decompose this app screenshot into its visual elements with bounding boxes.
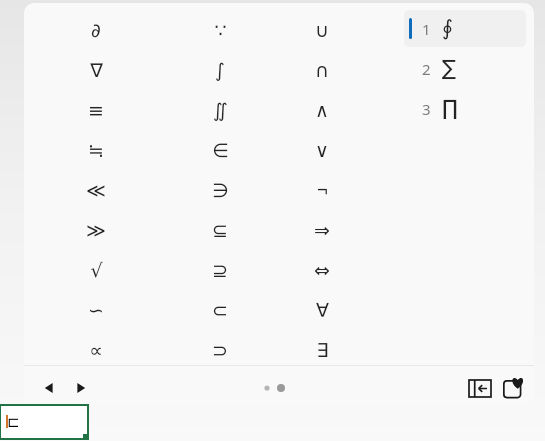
staticText: 3 bbox=[422, 99, 431, 119]
button[interactable]: ∧ bbox=[296, 90, 348, 130]
button[interactable]: ∀ bbox=[296, 290, 348, 330]
staticText: 1 bbox=[422, 19, 431, 39]
button[interactable]: ∃ bbox=[296, 330, 348, 370]
staticText: ∃ bbox=[316, 339, 329, 361]
button[interactable]: Dock panel bbox=[465, 373, 495, 403]
staticText: ∪ bbox=[315, 19, 329, 41]
button[interactable]: ≪ bbox=[70, 170, 122, 210]
staticText: ⇔ bbox=[314, 259, 330, 281]
staticText: ∮ bbox=[442, 16, 453, 40]
staticText: ≪ bbox=[86, 179, 106, 201]
button[interactable]: ∩ bbox=[296, 50, 348, 90]
staticText: ⊂ bbox=[212, 299, 228, 321]
staticText: ∈ bbox=[212, 139, 229, 161]
staticText: ≡ bbox=[88, 99, 104, 121]
staticText: ∽ bbox=[88, 299, 104, 321]
staticText: ⊃ bbox=[212, 339, 228, 361]
button[interactable]: ∫ bbox=[194, 50, 246, 90]
button[interactable]: Previous page bbox=[34, 373, 64, 403]
staticText: ¬ bbox=[317, 177, 328, 203]
button[interactable]: ∈ bbox=[194, 130, 246, 170]
staticText: √ bbox=[90, 259, 103, 281]
button[interactable]: ⊇ bbox=[194, 250, 246, 290]
button[interactable]: ≡ bbox=[70, 90, 122, 130]
staticText: 2 bbox=[422, 59, 431, 79]
button[interactable]: ⊆ bbox=[194, 210, 246, 250]
button[interactable]: Next page bbox=[66, 373, 96, 403]
staticText: ⇒ bbox=[314, 219, 330, 241]
button[interactable]: Favorites bbox=[498, 371, 530, 403]
staticText: ∩ bbox=[315, 59, 329, 81]
button[interactable]: ∋ bbox=[194, 170, 246, 210]
staticText: ∧ bbox=[315, 99, 329, 121]
button[interactable]: ∪ bbox=[296, 10, 348, 50]
staticText: ⊆ bbox=[212, 219, 228, 241]
button[interactable]: ∽ bbox=[70, 290, 122, 330]
button[interactable]: ≒ bbox=[70, 130, 122, 170]
staticText: ≫ bbox=[86, 219, 106, 241]
staticText: ⊇ bbox=[212, 259, 228, 281]
button[interactable]: ⇔ bbox=[296, 250, 348, 290]
staticText: ∨ bbox=[315, 139, 329, 161]
button[interactable]: ∝ bbox=[70, 330, 122, 370]
button[interactable]: ⇒ bbox=[296, 210, 348, 250]
button[interactable]: ∵ bbox=[194, 10, 246, 50]
button[interactable]: ⊂ bbox=[194, 290, 246, 330]
button[interactable]: ⊃ bbox=[194, 330, 246, 370]
button[interactable]: √ bbox=[70, 250, 122, 290]
staticText: ∇ bbox=[90, 59, 103, 81]
button[interactable]: 2 bbox=[404, 50, 526, 87]
staticText: ∑ bbox=[442, 56, 457, 80]
staticText: ∵ bbox=[214, 19, 227, 41]
staticText: ∬ bbox=[213, 99, 228, 121]
button[interactable]: ∨ bbox=[296, 130, 348, 170]
button[interactable]: ∬ bbox=[194, 90, 246, 130]
staticText: ≒ bbox=[88, 139, 104, 161]
button[interactable]: 3 bbox=[404, 90, 526, 127]
button[interactable]: 1 bbox=[404, 10, 526, 47]
staticText: ∀ bbox=[316, 299, 329, 321]
button[interactable]: ≫ bbox=[70, 210, 122, 250]
button[interactable]: ∂ bbox=[70, 10, 122, 50]
staticText: ∫ bbox=[215, 59, 225, 81]
staticText: ∏ bbox=[442, 96, 458, 120]
staticText: ∋ bbox=[212, 179, 229, 201]
staticText: ∂ bbox=[91, 19, 101, 41]
button[interactable]: ∇ bbox=[70, 50, 122, 90]
staticText: ⊏ bbox=[7, 413, 20, 430]
staticText: ∝ bbox=[89, 339, 103, 361]
button[interactable]: ¬ bbox=[296, 170, 348, 210]
